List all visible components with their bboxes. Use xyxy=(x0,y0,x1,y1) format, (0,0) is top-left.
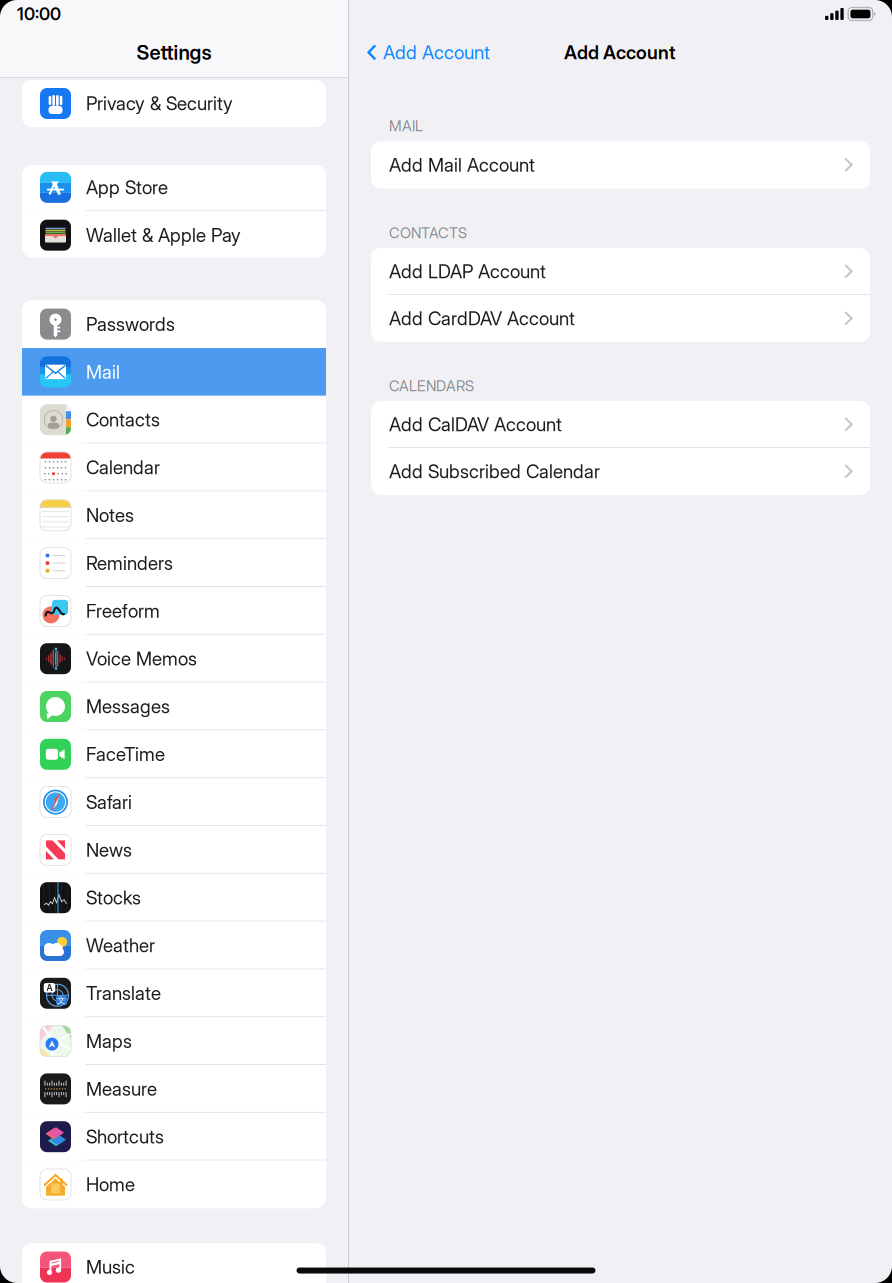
button[interactable]: Safari xyxy=(22,778,326,826)
staticText: FaceTime xyxy=(86,743,165,766)
staticText: MAIL xyxy=(389,117,423,135)
staticText: Settings xyxy=(136,40,211,65)
staticText: CONTACTS xyxy=(389,224,467,242)
staticText: Music xyxy=(86,1256,135,1278)
button[interactable]: Add Subscribed Calendar xyxy=(371,448,870,495)
staticText: App Store xyxy=(86,176,168,199)
button[interactable]: Notes xyxy=(22,491,326,539)
button[interactable]: App Store xyxy=(22,163,326,211)
button[interactable]: News xyxy=(22,826,326,874)
button[interactable]: FaceTime xyxy=(22,730,326,778)
button[interactable]: Wallet & Apple Pay xyxy=(22,211,326,259)
button[interactable]: Contacts xyxy=(22,396,326,444)
button[interactable]: Stocks xyxy=(22,874,326,922)
staticText: News xyxy=(86,839,132,861)
button[interactable]: Mail xyxy=(22,348,326,396)
button[interactable]: Measure xyxy=(22,1065,326,1113)
button[interactable]: Add CardDAV Account xyxy=(371,295,870,342)
button[interactable]: Messages xyxy=(22,683,326,730)
staticText: Freeform xyxy=(86,600,160,622)
staticText: Safari xyxy=(86,791,132,813)
staticText: Add LDAP Account xyxy=(389,260,546,283)
button[interactable]: Add CalDAV Account xyxy=(371,401,870,448)
staticText: Add Mail Account xyxy=(389,154,535,176)
button[interactable]: Privacy & Security xyxy=(22,80,326,127)
staticText: Shortcuts xyxy=(86,1125,164,1148)
button[interactable]: Passwords xyxy=(22,300,326,348)
staticText: A xyxy=(46,983,52,993)
staticText: Reminders xyxy=(86,552,173,574)
staticText: Maps xyxy=(86,1030,132,1052)
button[interactable]: Freeform xyxy=(22,587,326,635)
button[interactable]: Reminders xyxy=(22,539,326,587)
button[interactable]: Maps xyxy=(22,1017,326,1065)
button[interactable]: Add Mail Account xyxy=(371,141,870,188)
staticText: CALENDARS xyxy=(389,377,474,395)
staticText: Weather xyxy=(86,934,155,957)
button[interactable]: Add LDAP Account xyxy=(371,248,870,295)
staticText: Messages xyxy=(86,695,170,718)
button[interactable]: Home xyxy=(22,1161,326,1208)
button[interactable]: Calendar xyxy=(22,444,326,491)
staticText: Wallet & Apple Pay xyxy=(86,224,241,246)
staticText: Add Account xyxy=(383,41,490,64)
staticText: Voice Memos xyxy=(86,647,197,670)
button[interactable]: Shortcuts xyxy=(22,1113,326,1161)
staticText: Translate xyxy=(86,982,161,1005)
staticText: 10:00 xyxy=(17,3,61,24)
staticText: Add CardDAV Account xyxy=(389,307,575,330)
staticText: Home xyxy=(86,1173,135,1196)
button[interactable]: A xyxy=(22,969,326,1017)
staticText: 文 xyxy=(57,995,66,1006)
staticText: Passwords xyxy=(86,313,175,335)
staticText: Calendar xyxy=(86,456,160,479)
staticText: Add Account xyxy=(564,41,676,64)
staticText: Stocks xyxy=(86,886,141,909)
staticText: Measure xyxy=(86,1078,157,1100)
staticText: Notes xyxy=(86,504,134,527)
button[interactable]: Music xyxy=(22,1243,326,1283)
button[interactable]: Weather xyxy=(22,922,326,969)
staticText: Contacts xyxy=(86,408,160,431)
staticText: Add CalDAV Account xyxy=(389,413,562,436)
staticText: Mail xyxy=(86,361,120,383)
button[interactable]: Voice Memos xyxy=(22,635,326,683)
button[interactable]: Add Account xyxy=(349,28,498,77)
staticText: Privacy & Security xyxy=(86,92,233,115)
staticText: Add Subscribed Calendar xyxy=(389,460,600,483)
